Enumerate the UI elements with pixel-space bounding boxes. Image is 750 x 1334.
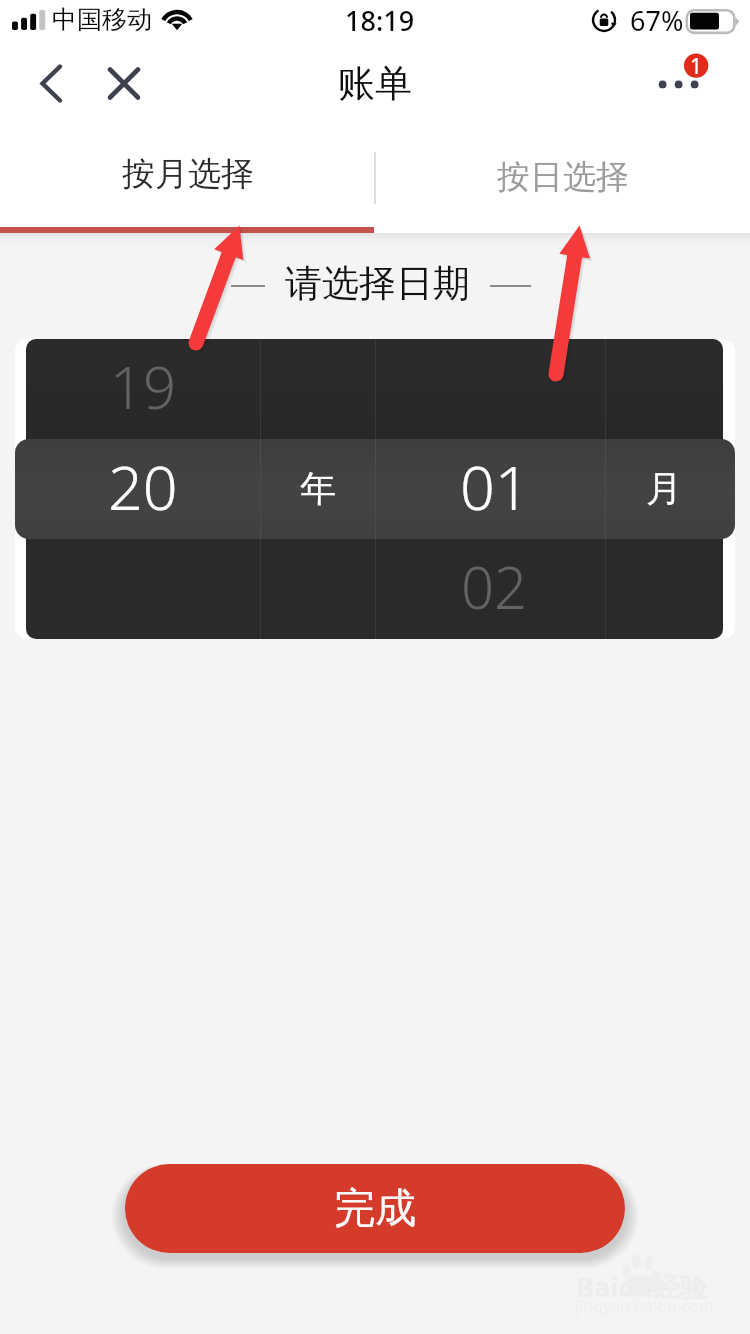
staticText: 67% xyxy=(630,2,684,39)
button[interactable]: Close xyxy=(96,50,152,117)
button[interactable]: 按日选择 xyxy=(375,126,750,222)
button[interactable]: 按月选择 xyxy=(0,126,375,222)
staticText: 01 xyxy=(460,445,530,528)
staticText: 账单 xyxy=(338,60,412,107)
staticText: 18:19 xyxy=(345,2,415,39)
button[interactable]: More options xyxy=(640,46,720,108)
staticText: 请选择日期 xyxy=(285,260,470,307)
staticText: 完成 xyxy=(334,1183,416,1235)
staticText: Baidu经验 xyxy=(576,1268,707,1305)
button[interactable]: 完成 xyxy=(125,1164,625,1253)
staticText: 02 xyxy=(461,547,528,626)
staticText: 20 xyxy=(108,445,178,528)
button[interactable]: Back xyxy=(14,50,74,117)
staticText: 按月选择 xyxy=(122,153,254,195)
staticText: 19 xyxy=(110,347,177,426)
staticText: 中国移动 xyxy=(52,4,152,35)
staticText: 按日选择 xyxy=(497,156,629,198)
staticText: 1 xyxy=(690,52,703,81)
staticText: 年 xyxy=(300,466,336,511)
staticText: 月 xyxy=(646,466,682,511)
